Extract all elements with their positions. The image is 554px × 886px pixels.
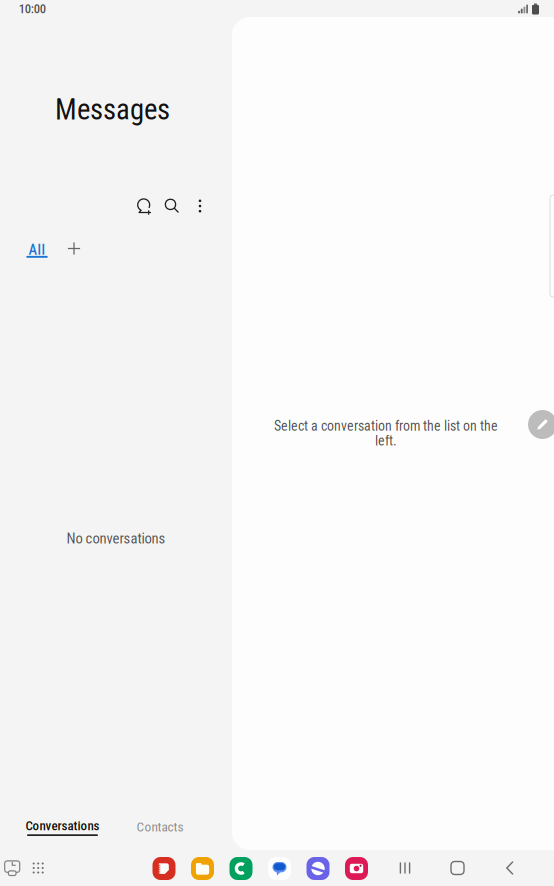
staticText: left.	[375, 433, 397, 449]
button[interactable]: Samsung Notes	[152, 857, 175, 880]
staticText: No conversations	[66, 530, 165, 547]
button[interactable]: Search	[158, 192, 186, 220]
button[interactable]: Apps	[27, 857, 49, 879]
button[interactable]: Home	[446, 857, 468, 879]
button[interactable]: More options	[186, 192, 214, 220]
button[interactable]: My Files	[191, 857, 214, 880]
button[interactable]: New conversation	[130, 192, 158, 220]
button[interactable]: Contacts	[127, 814, 193, 840]
button[interactable]: DeX mode	[1, 857, 23, 879]
button[interactable]: Recents	[394, 857, 416, 879]
button[interactable]: Conversations	[20, 814, 105, 840]
staticText: Conversations	[25, 818, 99, 833]
button[interactable]: Phone	[229, 857, 252, 880]
staticText: 10:00	[19, 2, 46, 16]
button[interactable]: Back	[499, 857, 521, 879]
button[interactable]: Messages	[268, 857, 291, 880]
staticText: Contacts	[136, 819, 183, 835]
staticText: Select a conversation from the list on t…	[274, 418, 498, 434]
staticText: All	[28, 241, 45, 258]
staticText: Messages	[55, 93, 170, 127]
button[interactable]: Add category	[61, 235, 87, 261]
button[interactable]: Internet	[306, 857, 329, 880]
button[interactable]: Camera	[345, 857, 368, 880]
button[interactable]: All	[20, 236, 54, 262]
